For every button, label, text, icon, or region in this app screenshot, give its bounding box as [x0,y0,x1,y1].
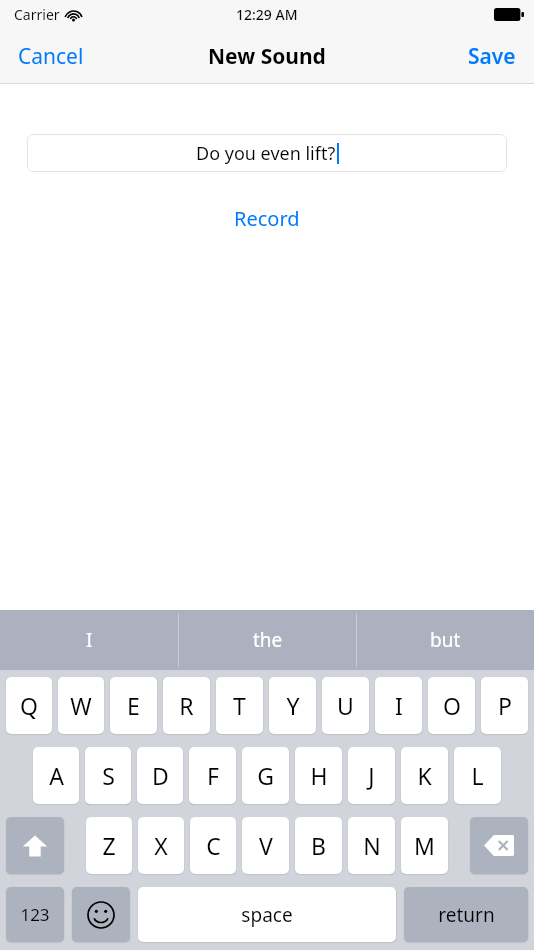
button[interactable]: T [216,677,263,734]
button[interactable]: Z [86,817,132,874]
staticText: B [311,830,326,861]
staticText: Cancel [18,42,84,71]
button[interactable]: E [110,677,157,734]
button[interactable]: U [322,677,369,734]
staticText: A [49,760,64,791]
button[interactable]: B [295,817,342,874]
staticText: C [206,830,221,861]
staticText: G [257,760,274,791]
staticText: I [86,627,93,653]
staticText: Record [234,205,300,232]
staticText: H [310,760,328,791]
staticText: V [259,830,273,861]
button[interactable]: H [295,747,342,804]
staticText: but [430,627,461,653]
button[interactable]: P [481,677,528,734]
button[interactable]: Q [6,677,52,734]
button[interactable]: F [189,747,236,804]
button[interactable]: return [404,887,528,942]
staticText: K [417,760,432,791]
staticText: F [207,760,219,791]
staticText: W [70,690,92,721]
button[interactable]: Record [214,199,320,238]
button[interactable]: the [179,610,356,670]
button[interactable]: Do you even lift? [27,134,507,172]
button[interactable]: R [163,677,210,734]
button[interactable]: J [348,747,395,804]
staticText: space [241,902,293,928]
button[interactable]: Cancel [0,28,102,84]
staticText: the [253,627,283,653]
button[interactable]: Y [269,677,316,734]
staticText: R [179,690,194,721]
staticText: O [443,690,461,721]
button[interactable]: Emoji keyboard [72,887,130,942]
staticText: Y [286,690,300,721]
staticText: E [127,690,140,721]
staticText: Q [20,690,38,721]
button[interactable]: N [348,817,395,874]
staticText: 123 [20,903,50,926]
staticText: Save [468,42,516,71]
staticText: Carrier [14,5,60,24]
staticText: T [233,690,246,721]
staticText: Do you even lift? [196,141,336,166]
staticText: M [414,830,435,861]
staticText: I [395,690,403,721]
staticText: U [337,690,354,721]
button[interactable]: W [58,677,104,734]
button[interactable]: D [137,747,183,804]
button[interactable]: X [138,817,184,874]
button[interactable]: C [190,817,236,874]
button[interactable]: I [0,610,178,670]
button[interactable]: but [357,610,534,670]
button[interactable]: K [401,747,448,804]
button[interactable]: G [242,747,289,804]
button[interactable]: Save [450,28,534,84]
staticText: J [368,760,375,791]
button[interactable]: A [33,747,79,804]
staticText: New Sound [208,42,326,71]
staticText: N [363,830,381,861]
staticText: S [102,760,115,791]
button[interactable]: I [375,677,422,734]
staticText: Z [102,830,116,861]
staticText: L [471,760,484,791]
button[interactable]: O [428,677,475,734]
staticText: 12:29 AM [236,5,298,24]
button[interactable]: V [242,817,289,874]
button[interactable]: S [85,747,131,804]
button[interactable]: M [401,817,448,874]
staticText: return [438,902,495,928]
staticText: X [154,830,168,861]
staticText: D [152,760,169,791]
button[interactable]: Shift [6,817,64,874]
button[interactable]: Backspace [470,817,528,874]
button[interactable]: space [138,887,396,942]
button[interactable]: 123 [6,887,64,942]
button[interactable]: L [454,747,501,804]
staticText: P [498,690,512,721]
